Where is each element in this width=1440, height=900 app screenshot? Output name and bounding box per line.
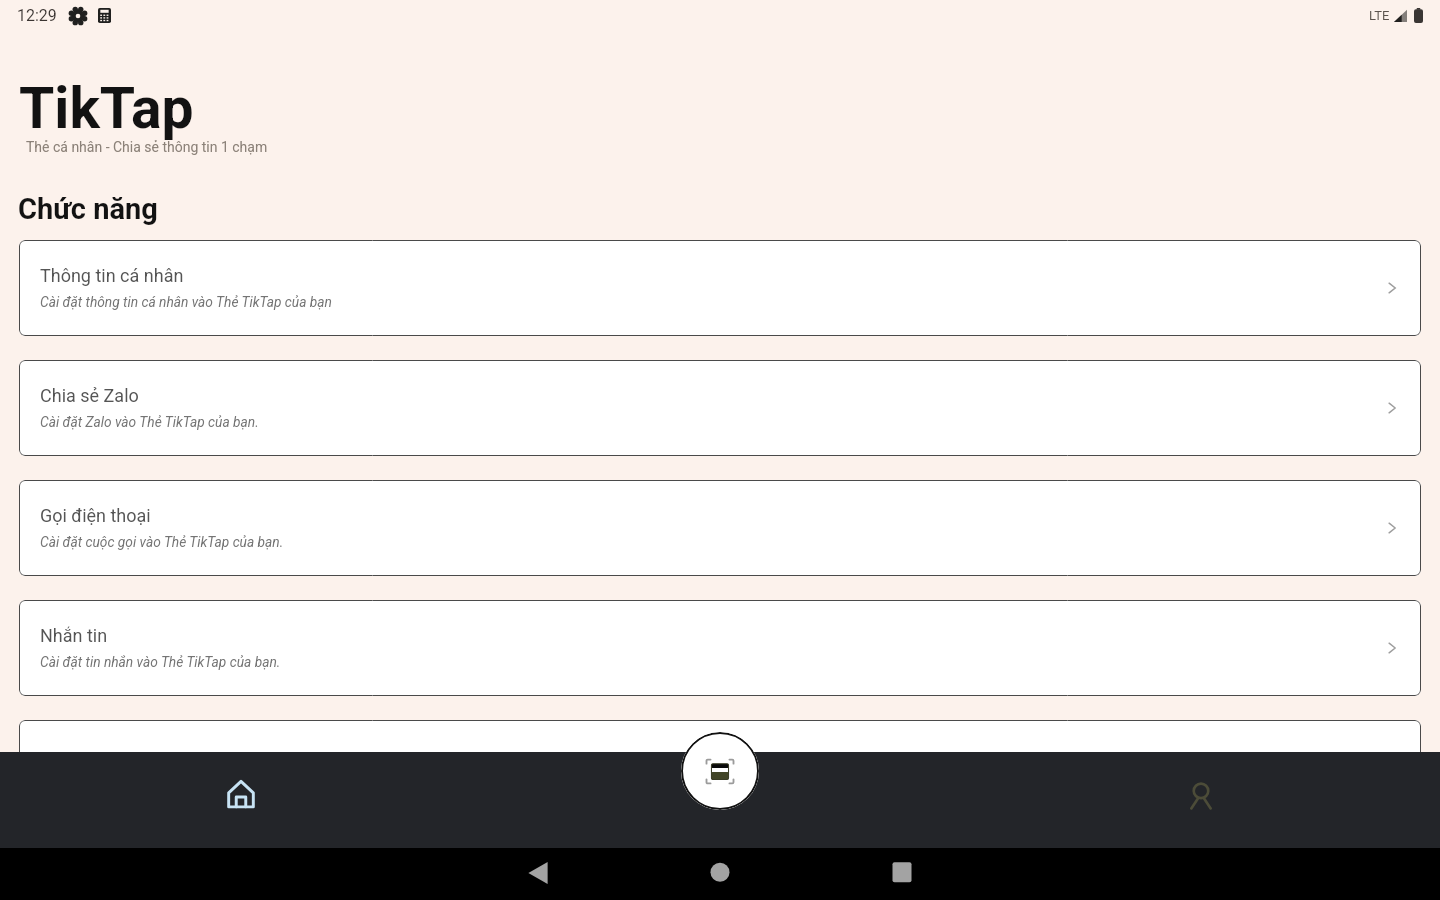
button[interactable]: Scan card <box>681 732 759 810</box>
staticText: Cài đặt Zalo vào Thẻ TikTap của bạn. <box>40 414 259 430</box>
button[interactable]: Back <box>523 859 553 889</box>
button[interactable]: Profile <box>1173 767 1229 823</box>
button[interactable]: Email <box>19 720 1421 752</box>
staticText: Nhắn tin <box>40 625 108 646</box>
staticText: Chức năng <box>18 192 158 226</box>
staticText: Thẻ cá nhân - Chia sẻ thông tin 1 chạm <box>26 139 268 155</box>
staticText: Cài đặt thông tin cá nhân vào Thẻ TikTap… <box>40 294 332 310</box>
staticText: Cài đặt tin nhắn vào Thẻ TikTap của bạn. <box>40 654 281 670</box>
button[interactable]: Gọi điện thoại <box>19 480 1421 576</box>
staticText: LTE <box>1369 8 1390 23</box>
button[interactable]: Home <box>213 766 269 822</box>
staticText: Thông tin cá nhân <box>40 265 184 286</box>
staticText: Cài đặt cuộc gọi vào Thẻ TikTap của bạn. <box>40 534 284 550</box>
button[interactable]: Nhắn tin <box>19 600 1421 696</box>
button[interactable]: Chia sẻ Zalo <box>19 360 1421 456</box>
staticText: 12:29 <box>17 6 57 25</box>
button[interactable]: Thông tin cá nhân <box>19 240 1421 336</box>
button[interactable]: Recent apps <box>887 859 917 889</box>
staticText: TikTap <box>19 75 194 142</box>
staticText: Gọi điện thoại <box>40 505 151 526</box>
button[interactable]: Home <box>705 859 735 889</box>
staticText: Chia sẻ Zalo <box>40 385 139 406</box>
